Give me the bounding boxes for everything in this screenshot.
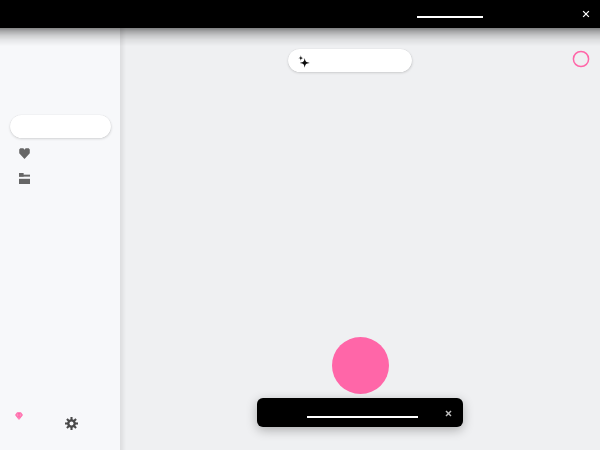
- button[interactable]: Create: [332, 337, 389, 394]
- button[interactable]: Folders: [19, 173, 30, 184]
- button[interactable]: Settings: [65, 417, 78, 430]
- button[interactable]: [288, 49, 412, 72]
- button[interactable]: [10, 115, 111, 138]
- button[interactable]: Profile: [570, 48, 592, 70]
- button[interactable]: Premium: [15, 412, 23, 420]
- button[interactable]: Close: [580, 8, 592, 20]
- button[interactable]: Favorites: [19, 148, 30, 159]
- button[interactable]: Dismiss: [443, 408, 454, 419]
